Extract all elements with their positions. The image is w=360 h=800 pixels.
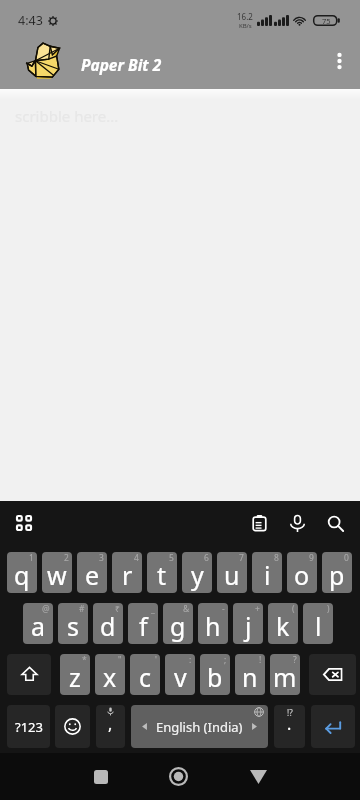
staticText: t — [157, 558, 167, 592]
staticText: 8 — [274, 552, 279, 564]
button[interactable]: r — [112, 552, 142, 593]
staticText: # — [79, 603, 85, 615]
staticText: 4 — [134, 552, 139, 564]
button[interactable]: n — [235, 654, 265, 695]
staticText: e — [85, 558, 100, 592]
staticText: " — [118, 654, 122, 666]
staticText: n — [242, 660, 258, 694]
button[interactable]: m — [270, 654, 300, 695]
staticText: q — [14, 558, 30, 592]
staticText: p — [329, 558, 345, 592]
button[interactable]: Space — [131, 705, 268, 748]
staticText: 0 — [344, 552, 349, 564]
staticText: k — [276, 609, 290, 643]
button[interactable]: t — [147, 552, 177, 593]
staticText: 3 — [99, 552, 104, 564]
staticText: z — [69, 660, 81, 694]
button[interactable]: Backspace — [309, 654, 356, 695]
staticText: 2 — [64, 552, 69, 564]
button[interactable]: o — [287, 552, 317, 593]
button[interactable]: c — [130, 654, 160, 695]
button[interactable]: e — [77, 552, 107, 593]
staticText: s — [67, 609, 79, 643]
button[interactable]: l — [303, 603, 333, 644]
staticText: * — [82, 654, 87, 666]
staticText: : — [189, 654, 192, 666]
staticText: _ — [151, 603, 155, 615]
button[interactable]: u — [217, 552, 247, 593]
staticText: y — [191, 558, 204, 592]
button[interactable]: h — [198, 603, 228, 644]
staticText: v — [174, 660, 187, 694]
button[interactable]: z — [60, 654, 90, 695]
button[interactable]: y — [182, 552, 212, 593]
button[interactable]: b — [200, 654, 230, 695]
button[interactable]: Recents — [77, 753, 125, 800]
button[interactable]: j — [233, 603, 263, 644]
staticText: 1 — [29, 552, 34, 564]
button[interactable]: Enter — [311, 705, 355, 748]
staticText: . — [287, 713, 292, 735]
staticText: & — [183, 603, 190, 615]
staticText: d — [100, 609, 116, 643]
staticText: ( — [292, 603, 295, 615]
staticText: 16.2 — [237, 11, 253, 22]
button[interactable]: More options — [314, 42, 360, 88]
staticText: i — [264, 558, 271, 592]
staticText: ₹ — [115, 603, 120, 615]
button[interactable]: Home — [154, 753, 202, 800]
staticText: w — [47, 558, 67, 592]
button[interactable]: k — [268, 603, 298, 644]
staticText: h — [205, 609, 221, 643]
button[interactable]: a — [23, 603, 53, 644]
button[interactable]: g — [163, 603, 193, 644]
staticText: 75 — [322, 16, 331, 26]
button[interactable]: Comma — [96, 705, 125, 748]
button[interactable]: Shift — [7, 654, 51, 695]
staticText: KB/s — [239, 22, 252, 30]
button[interactable]: Voice input — [278, 504, 316, 542]
staticText: 4:43 — [18, 12, 43, 29]
button[interactable]: Emoji — [55, 705, 90, 748]
staticText: ) — [327, 603, 330, 615]
staticText: u — [224, 558, 240, 592]
button[interactable]: x — [95, 654, 125, 695]
button[interactable]: Toolbox — [6, 505, 42, 541]
button[interactable]: Back — [234, 753, 282, 800]
button[interactable]: f — [128, 603, 158, 644]
button[interactable]: Symbols — [7, 705, 50, 748]
button[interactable]: v — [165, 654, 195, 695]
staticText: English (India) — [156, 718, 243, 736]
staticText: , — [108, 713, 113, 735]
staticText: Paper Bit 2 — [81, 54, 162, 75]
staticText: j — [245, 609, 252, 643]
button[interactable]: d — [93, 603, 123, 644]
button[interactable]: w — [42, 552, 72, 593]
staticText: ' — [155, 654, 157, 666]
staticText: c — [139, 660, 152, 694]
button[interactable]: i — [252, 552, 282, 593]
staticText: f — [139, 609, 148, 643]
staticText: x — [103, 660, 117, 694]
staticText: b — [207, 660, 223, 694]
button[interactable]: q — [7, 552, 37, 593]
staticText: o — [294, 558, 310, 592]
button[interactable]: Period — [274, 705, 305, 748]
button[interactable]: Clipboard — [240, 504, 278, 542]
staticText: - — [222, 603, 225, 615]
staticText: m — [273, 660, 297, 694]
staticText: + — [255, 603, 260, 615]
staticText: ! — [259, 654, 262, 666]
staticText: 5 — [169, 552, 174, 564]
button[interactable]: s — [58, 603, 88, 644]
staticText: 6 — [204, 552, 209, 564]
staticText: a — [31, 609, 46, 643]
staticText: 9 — [309, 552, 314, 564]
button[interactable]: Search — [316, 504, 354, 542]
staticText: ; — [224, 654, 227, 666]
staticText: r — [122, 558, 133, 592]
staticText: ?123 — [15, 718, 43, 736]
staticText: scribble here... — [15, 106, 119, 126]
button[interactable]: p — [322, 552, 352, 593]
staticText: ? — [293, 654, 297, 666]
